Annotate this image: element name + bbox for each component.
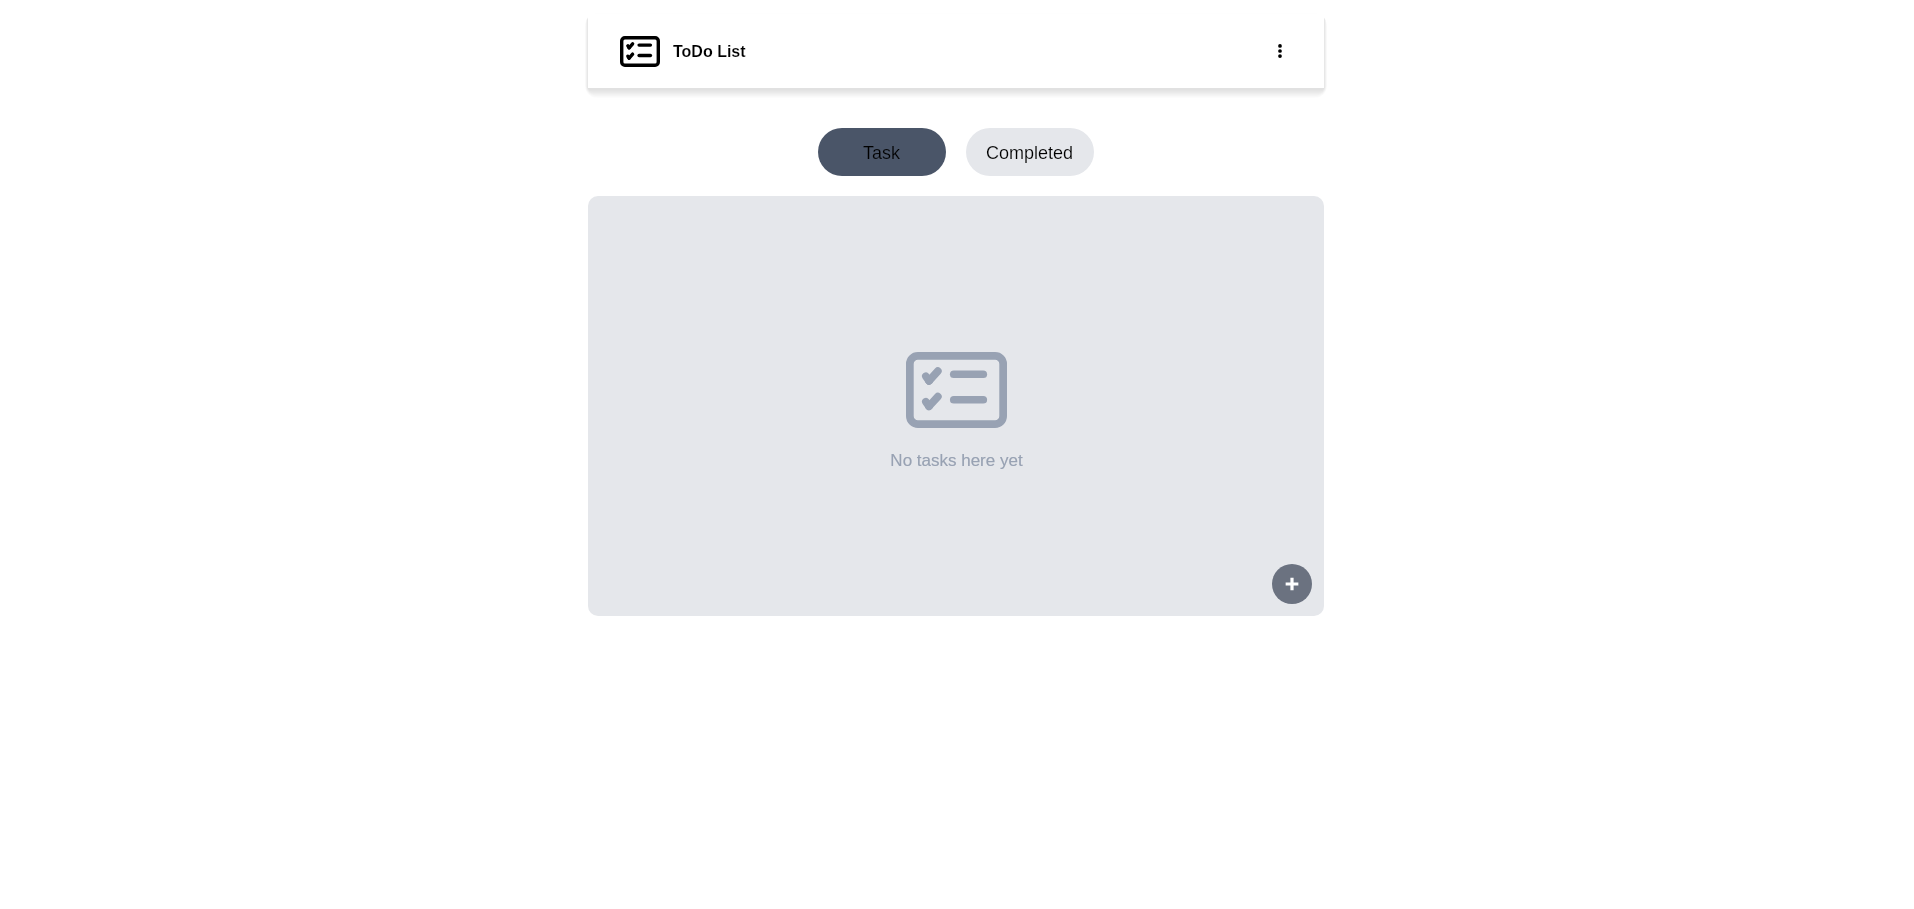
staticText: No tasks here yet xyxy=(890,451,1023,470)
button[interactable]: Completed xyxy=(966,128,1094,176)
button[interactable]: Add task xyxy=(1272,564,1312,604)
staticText: Completed xyxy=(986,143,1074,163)
staticText: Task xyxy=(863,143,901,163)
button[interactable]: More options xyxy=(1256,27,1304,75)
button[interactable]: Task xyxy=(818,128,946,176)
staticText: ToDo List xyxy=(673,43,746,61)
